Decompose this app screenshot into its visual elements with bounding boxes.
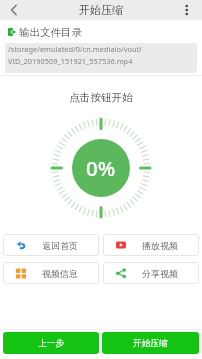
- staticText: 上一步: [38, 338, 65, 349]
- staticText: 开始压缩: [79, 3, 123, 17]
- staticText: 返回首页: [42, 240, 78, 251]
- button[interactable]: 上一步: [3, 332, 99, 354]
- staticText: 点击按钮开始: [0, 91, 202, 104]
- button[interactable]: 返回首页: [3, 234, 99, 256]
- button[interactable]: 播放视频: [103, 234, 199, 256]
- staticText: 分享视频: [142, 268, 178, 279]
- staticText: /storage/emulated/0/cn.mediaio/vout/: [8, 44, 142, 54]
- staticText: 视频信息: [42, 268, 78, 279]
- staticText: VID_20190509_151921_557536.mp4: [8, 56, 133, 66]
- button[interactable]: 视频信息: [3, 262, 99, 284]
- button[interactable]: 开始压缩: [102, 332, 199, 354]
- button[interactable]: 分享视频: [103, 262, 199, 284]
- staticText: 开始压缩: [133, 338, 168, 349]
- staticText: 播放视频: [142, 240, 178, 251]
- button[interactable]: Back: [0, 0, 28, 20]
- button[interactable]: More options: [172, 0, 202, 20]
- staticText: 输出文件目录: [19, 26, 82, 39]
- staticText: 0%: [86, 154, 116, 182]
